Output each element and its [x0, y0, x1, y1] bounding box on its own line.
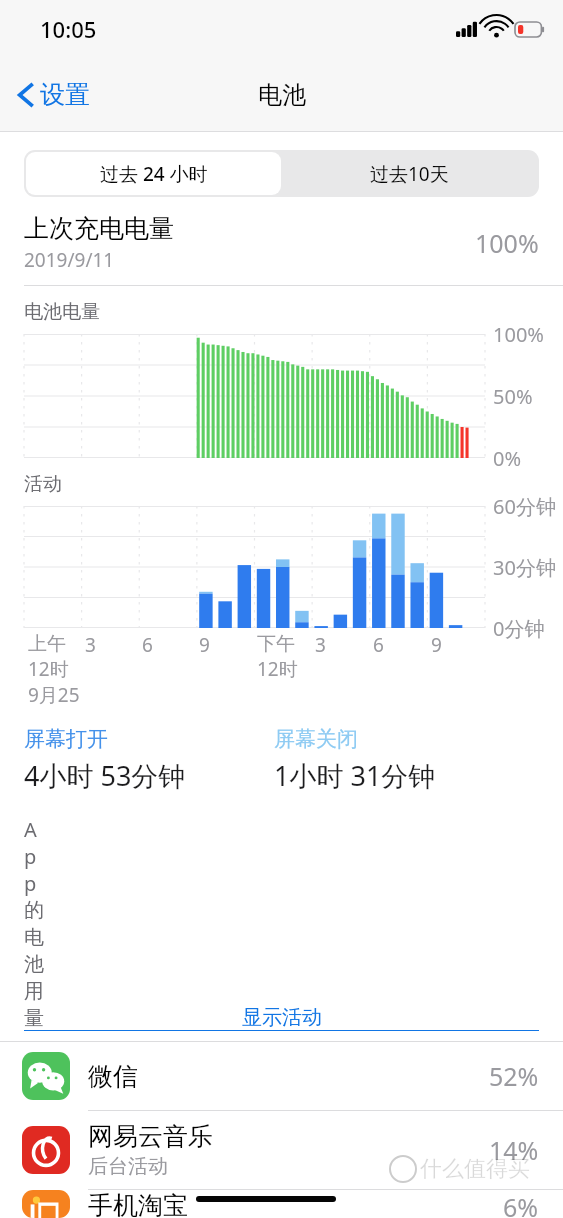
staticText: 上午: [28, 632, 66, 656]
staticText: 6: [373, 632, 384, 658]
button[interactable]: 手机淘宝: [0, 1190, 563, 1218]
button[interactable]: 网易云音乐: [0, 1111, 563, 1189]
staticText: 显示活动: [242, 1005, 322, 1030]
staticText: 3: [315, 632, 326, 658]
staticText: 下午: [257, 632, 295, 656]
staticText: 3: [85, 632, 96, 658]
staticText: 4小时 53分钟: [24, 757, 186, 794]
staticText: 100%: [493, 321, 544, 348]
staticText: 50%: [493, 383, 533, 410]
staticText: 12时: [257, 656, 298, 682]
staticText: 6%: [503, 1190, 539, 1218]
staticText: 屏幕关闭: [274, 726, 358, 752]
button[interactable]: 过去10天: [281, 152, 537, 195]
staticText: 电池: [258, 80, 306, 110]
button[interactable]: 上次充电电量: [0, 213, 563, 273]
staticText: 手机淘宝: [88, 1190, 188, 1218]
button[interactable]: 设置: [10, 73, 98, 116]
staticText: 什么值得买: [420, 1155, 530, 1183]
staticText: 微信: [88, 1061, 138, 1092]
staticText: 2019/9/11: [24, 247, 115, 273]
staticText: 1小时 31分钟: [274, 757, 436, 794]
staticText: 过去 24 小时: [100, 161, 208, 187]
staticText: 10:05: [40, 14, 97, 44]
staticText: 活动: [24, 472, 62, 496]
staticText: 上次充电电量: [24, 213, 174, 244]
button[interactable]: 显示活动: [24, 1005, 539, 1031]
staticText: 电池电量: [24, 300, 100, 324]
button[interactable]: 微信: [0, 1042, 563, 1110]
staticText: 30分钟: [493, 554, 556, 581]
staticText: 60分钟: [493, 493, 556, 520]
button[interactable]: 过去 24 小时: [26, 152, 281, 195]
staticText: 0分钟: [493, 615, 545, 642]
staticText: 14%: [489, 1133, 539, 1167]
staticText: 屏幕打开: [24, 726, 108, 752]
staticText: 100%: [475, 226, 539, 260]
staticText: 网易云音乐: [88, 1121, 213, 1152]
staticText: 设置: [40, 79, 90, 110]
staticText: 9: [431, 632, 442, 658]
staticText: 0%: [493, 445, 522, 472]
staticText: 52%: [489, 1059, 539, 1093]
staticText: 后台活动: [88, 1154, 168, 1179]
staticText: 6: [142, 632, 153, 658]
staticText: 9月25日: [28, 682, 81, 710]
staticText: 过去10天: [370, 161, 449, 187]
staticText: 12时: [28, 656, 69, 682]
staticText: 9: [199, 632, 210, 658]
